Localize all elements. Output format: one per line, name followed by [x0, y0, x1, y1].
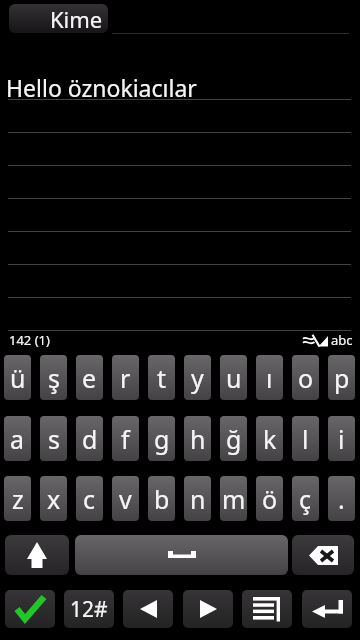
staticText: s — [48, 422, 60, 456]
staticText: e — [82, 361, 97, 395]
staticText: z — [12, 482, 24, 516]
button[interactable]: v — [112, 476, 139, 521]
button[interactable]: g — [148, 416, 175, 461]
button[interactable]: e — [76, 355, 103, 400]
staticText: h — [190, 422, 206, 456]
staticText: p — [334, 361, 350, 395]
button[interactable]: ş — [40, 355, 67, 400]
button[interactable]: Move right — [183, 590, 233, 628]
staticText: g — [154, 422, 170, 456]
button[interactable]: a — [4, 416, 31, 461]
button[interactable]: s — [40, 416, 67, 461]
staticText: . — [338, 482, 345, 516]
staticText: Hello öznokiacılar — [6, 72, 197, 103]
staticText: ü — [10, 361, 26, 395]
button[interactable]: l — [292, 416, 319, 461]
staticText: f — [121, 422, 130, 456]
staticText: ö — [262, 482, 278, 516]
staticText: v — [119, 482, 132, 516]
other: Input mode — [302, 334, 330, 348]
button[interactable]: Enter — [302, 590, 352, 628]
staticText: o — [298, 361, 314, 395]
button[interactable]: c — [76, 476, 103, 521]
staticText: r — [120, 361, 131, 395]
button[interactable]: Backspace — [292, 535, 354, 575]
staticText: ş — [48, 361, 60, 395]
staticText: ğ — [226, 422, 242, 456]
staticText: 12# — [70, 595, 108, 624]
button[interactable]: Send — [5, 590, 55, 628]
button[interactable]: m — [220, 476, 247, 521]
button[interactable]: d — [76, 416, 103, 461]
button[interactable]: . — [328, 476, 355, 521]
staticText: d — [82, 422, 98, 456]
staticText: t — [157, 361, 167, 395]
button[interactable]: y — [184, 355, 211, 400]
staticText: b — [154, 482, 170, 516]
staticText: Kime — [50, 4, 103, 33]
staticText: i — [338, 422, 345, 456]
staticText: k — [263, 422, 277, 456]
staticText: c — [83, 482, 96, 516]
button[interactable]: b — [148, 476, 175, 521]
button[interactable]: n — [184, 476, 211, 521]
button[interactable]: o — [292, 355, 319, 400]
button[interactable]: Space — [75, 535, 288, 575]
button[interactable]: k — [256, 416, 283, 461]
staticText: ç — [299, 482, 312, 516]
button[interactable]: Shift — [5, 535, 69, 575]
button[interactable]: p — [328, 355, 355, 400]
staticText: x — [47, 482, 61, 516]
staticText: 142 (1) — [9, 331, 50, 349]
button[interactable]: t — [148, 355, 175, 400]
button[interactable]: u — [220, 355, 247, 400]
button[interactable]: ü — [4, 355, 31, 400]
button[interactable]: r — [112, 355, 139, 400]
staticText: abc — [331, 331, 353, 349]
staticText: l — [302, 422, 309, 456]
staticText: y — [191, 361, 204, 395]
button[interactable]: f — [112, 416, 139, 461]
button[interactable]: Numbers — [64, 590, 114, 628]
button[interactable]: ö — [256, 476, 283, 521]
button[interactable]: Options — [242, 590, 292, 628]
button[interactable]: i — [328, 416, 355, 461]
staticText: n — [190, 482, 206, 516]
button[interactable]: x — [40, 476, 67, 521]
button[interactable]: ğ — [220, 416, 247, 461]
staticText: ı — [266, 361, 273, 395]
staticText: m — [222, 482, 246, 516]
button[interactable]: ı — [256, 355, 283, 400]
button[interactable]: Move left — [123, 590, 173, 628]
button[interactable]: h — [184, 416, 211, 461]
button[interactable]: ç — [292, 476, 319, 521]
staticText: u — [226, 361, 242, 395]
button[interactable]: z — [4, 476, 31, 521]
staticText: a — [10, 422, 25, 456]
button[interactable]: Kime — [9, 4, 108, 33]
